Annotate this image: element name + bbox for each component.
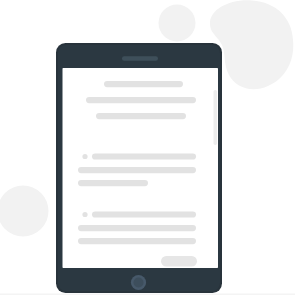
button[interactable]: Tablet device (0, 0, 295, 300)
other: Tablet illustration with placeholder con… (0, 0, 295, 300)
